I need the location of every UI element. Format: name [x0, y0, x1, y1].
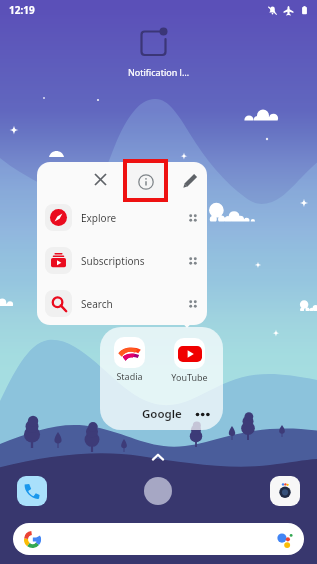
button[interactable]: Search	[13, 523, 304, 555]
button[interactable]: Search	[37, 282, 207, 325]
staticText: YouTube	[156, 371, 223, 383]
staticText: Search	[81, 297, 113, 311]
staticText: Notification l…	[0, 66, 317, 78]
button[interactable]: Widget info	[131, 167, 160, 196]
staticText: Explore	[81, 211, 117, 225]
button[interactable]: Close	[86, 165, 114, 193]
button[interactable]: YouTube	[174, 338, 205, 369]
button[interactable]: Explore	[37, 196, 207, 239]
button[interactable]: Open app drawer	[150, 450, 166, 466]
staticText: 12:19	[9, 3, 35, 17]
staticText: Stadia	[96, 370, 163, 382]
button[interactable]: Stadia	[114, 337, 145, 368]
button[interactable]: Notification log	[133, 24, 173, 62]
button[interactable]: Phone	[17, 476, 47, 506]
staticText: Google	[142, 406, 182, 422]
button[interactable]	[100, 327, 223, 430]
button[interactable]: App shortcut	[144, 477, 172, 505]
button[interactable]: Edit	[176, 166, 204, 194]
button[interactable]: Subscriptions	[37, 239, 207, 282]
staticText: Subscriptions	[81, 254, 145, 268]
button[interactable]: Camera	[270, 476, 300, 506]
